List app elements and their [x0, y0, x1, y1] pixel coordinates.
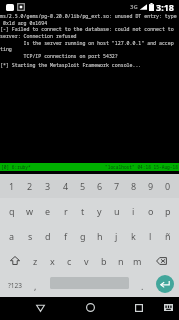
button[interactable]: . [134, 273, 150, 298]
staticText: [*] Starting the Metasploit Framework co… [0, 62, 142, 69]
button[interactable]: n [112, 248, 129, 273]
button[interactable]: 3 [39, 174, 57, 198]
staticText: server: Connection refused [0, 33, 77, 40]
button[interactable]: 7 [108, 174, 125, 198]
button[interactable]: r [57, 198, 74, 223]
staticText: 2 [27, 180, 33, 192]
button[interactable]: , [26, 273, 45, 298]
staticText: y [97, 205, 102, 217]
staticText: 8 [131, 180, 137, 192]
staticText: ms/2.5.0/gems/pg-0.20.0/lib/pg_ext.so: u… [0, 13, 177, 20]
button[interactable]: Hide keyboard [154, 296, 179, 319]
staticText: r [64, 205, 68, 217]
staticText: "localhost" 04:18 15-Aug-18 [105, 164, 178, 170]
button[interactable]: 8 [125, 174, 142, 198]
button[interactable]: i [125, 198, 142, 223]
staticText: 3 [45, 180, 51, 192]
staticText: e [45, 205, 51, 217]
button[interactable]: k [125, 223, 142, 248]
button[interactable]: e [39, 198, 57, 223]
button[interactable]: 6 [91, 174, 108, 198]
staticText: v [84, 255, 89, 267]
staticText: k [131, 230, 136, 242]
staticText: l [149, 230, 152, 242]
button[interactable]: m [129, 248, 146, 273]
button[interactable]: l [142, 223, 159, 248]
staticText: 4 [63, 180, 69, 192]
button[interactable]: b [95, 248, 112, 273]
button[interactable]: j [108, 223, 125, 248]
staticText: q [9, 205, 15, 217]
staticText: 1 [9, 180, 15, 192]
staticText: a [9, 230, 15, 242]
staticText: o [148, 205, 154, 217]
button[interactable]: Recents [125, 296, 153, 319]
button[interactable]: v [78, 248, 95, 273]
staticText: 3:18 [156, 1, 174, 13]
staticText: [0] 6:ruby* [1, 164, 31, 170]
staticText: f [64, 230, 68, 242]
button[interactable]: ñ [159, 223, 176, 248]
button[interactable]: h [91, 223, 108, 248]
staticText: p [165, 205, 171, 217]
staticText: 7 [114, 180, 120, 192]
staticText: 9 [148, 180, 154, 192]
staticText: 0x1d arg 0x1694 [0, 20, 48, 27]
button[interactable]: 5 [74, 174, 91, 198]
button[interactable]: p [159, 198, 176, 223]
staticText: 3G [130, 3, 138, 11]
button[interactable]: q [3, 198, 21, 223]
staticText: ñ [165, 230, 171, 242]
staticText: ting [0, 46, 12, 53]
staticText: t [81, 205, 85, 217]
button[interactable]: Enter [156, 275, 174, 293]
staticText: 6 [97, 180, 103, 192]
staticText: [-] Failed to connect to the database: c… [0, 26, 174, 33]
button[interactable]: 0 [159, 174, 176, 198]
button[interactable]: o [142, 198, 159, 223]
staticText: h [97, 230, 103, 242]
staticText: x [50, 255, 55, 267]
button[interactable]: Home [76, 296, 104, 319]
button[interactable]: d [39, 223, 57, 248]
button[interactable]: 2 [21, 174, 39, 198]
staticText: , [34, 280, 37, 292]
staticText: n [118, 255, 124, 267]
staticText: s [28, 230, 33, 242]
button[interactable]: t [74, 198, 91, 223]
staticText: 5 [80, 180, 86, 192]
staticText: TCP/IP connections on port 5432? [0, 53, 118, 60]
button[interactable]: Shift [3, 248, 27, 273]
button[interactable]: f [57, 223, 74, 248]
staticText: b [101, 255, 107, 267]
staticText: Is the server running on host "127.0.0.1… [0, 40, 174, 47]
button[interactable]: 4 [57, 174, 74, 198]
staticText: ?123 [8, 281, 22, 290]
button[interactable]: 1 [3, 174, 21, 198]
staticText: g [80, 230, 86, 242]
button[interactable]: u [108, 198, 125, 223]
staticText: j [115, 230, 118, 242]
button[interactable]: ?123 [3, 273, 26, 298]
button[interactable]: Backspace [146, 248, 176, 273]
staticText: z [33, 255, 38, 267]
staticText: m [133, 255, 142, 267]
button[interactable]: x [44, 248, 61, 273]
button[interactable]: 9 [142, 174, 159, 198]
button[interactable]: y [91, 198, 108, 223]
staticText: . [141, 280, 144, 292]
button[interactable]: a [3, 223, 21, 248]
button[interactable]: w [21, 198, 39, 223]
staticText: c [67, 255, 72, 267]
button[interactable]: c [61, 248, 78, 273]
staticText: 0 [165, 180, 171, 192]
staticText: i [132, 205, 135, 217]
button[interactable]: s [21, 223, 39, 248]
staticText: u [114, 205, 120, 217]
button[interactable]: z [27, 248, 44, 273]
button[interactable]: g [74, 223, 91, 248]
button[interactable]: Back [26, 296, 54, 319]
staticText: d [45, 230, 51, 242]
staticText: w [26, 205, 34, 217]
